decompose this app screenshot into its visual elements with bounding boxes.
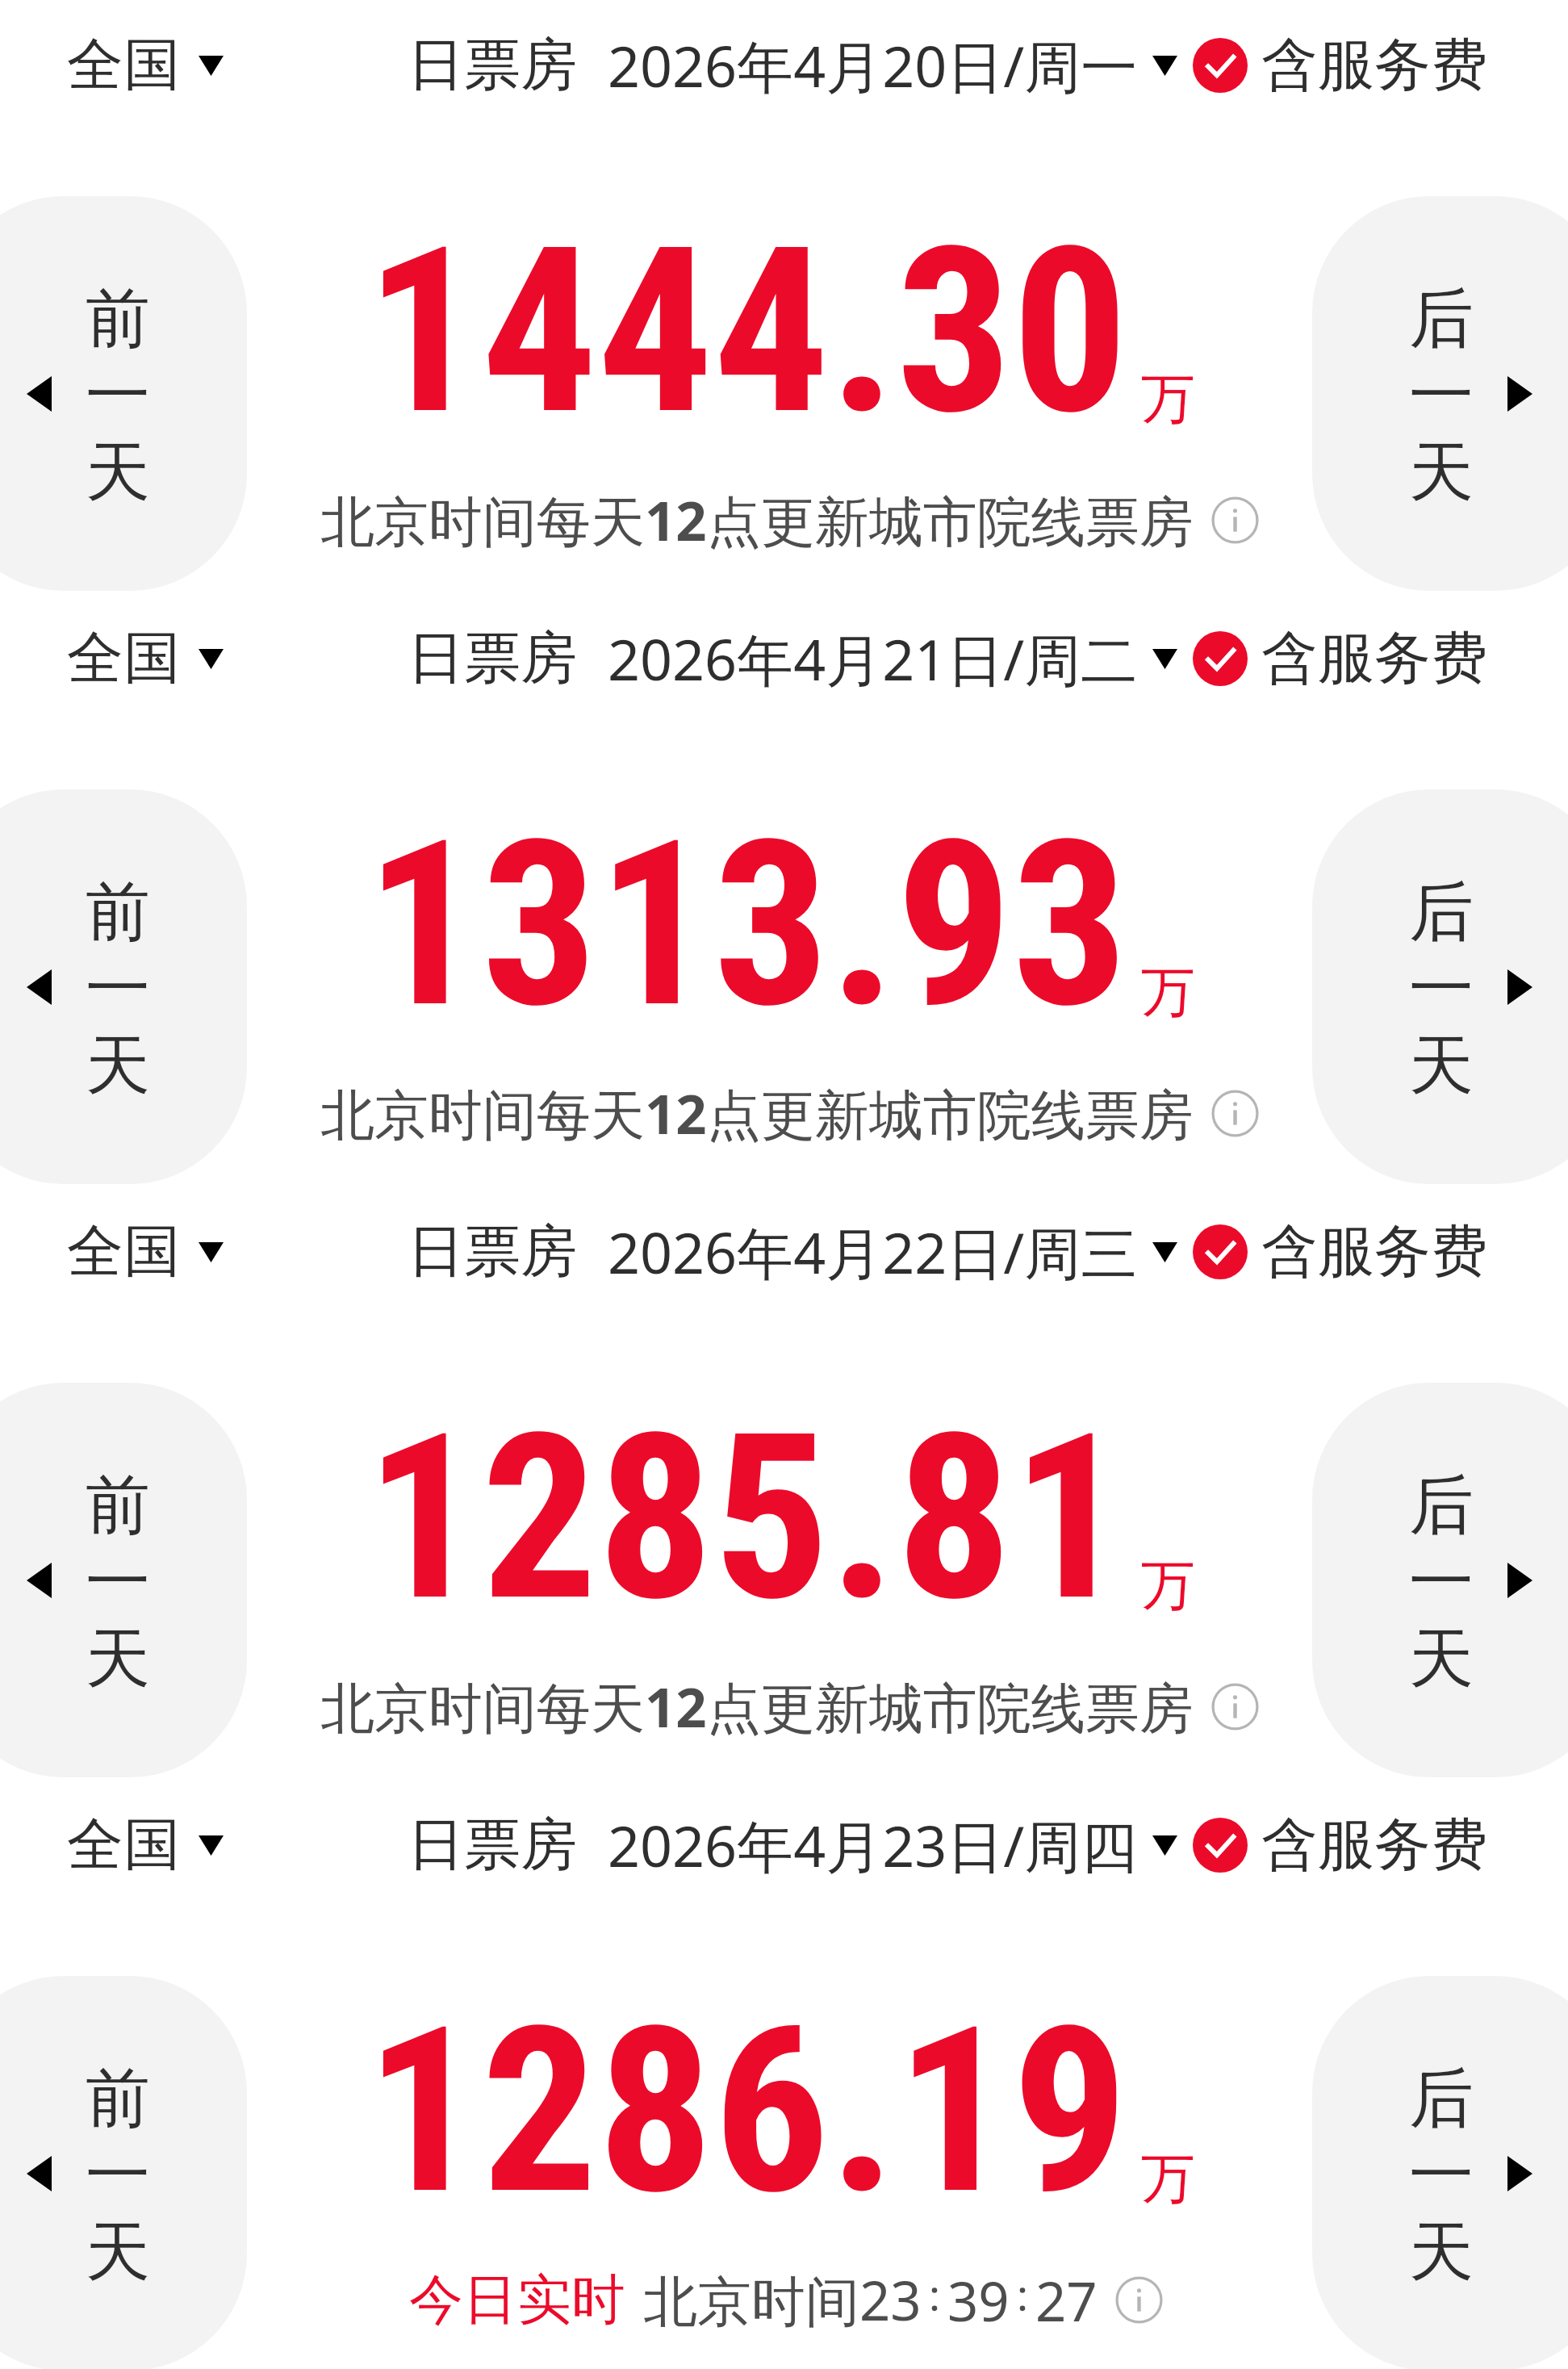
staticText: 日票房 bbox=[408, 1216, 577, 1287]
staticText: 1285.81 bbox=[366, 1384, 1128, 1653]
button[interactable]: 选择日期 bbox=[608, 22, 1177, 109]
staticText: 1444.30 bbox=[366, 198, 1128, 467]
staticText: 一 bbox=[86, 355, 150, 432]
button[interactable]: 日票房 bbox=[408, 615, 577, 702]
staticText: 2026年4月23日/周四 bbox=[608, 1806, 1138, 1884]
button[interactable]: 日票房 bbox=[408, 22, 577, 109]
staticText: 万 bbox=[1141, 1551, 1195, 1619]
button[interactable]: 说明 bbox=[1211, 1090, 1259, 1137]
button[interactable]: 选择日期 bbox=[608, 615, 1177, 702]
staticText: 万 bbox=[1141, 2145, 1195, 2212]
staticText: 39 bbox=[947, 2263, 1010, 2337]
staticText: 天 bbox=[86, 2212, 150, 2288]
staticText: 前 bbox=[86, 872, 150, 948]
staticText: 天 bbox=[1409, 1025, 1474, 1102]
button[interactable]: 前一天 bbox=[0, 196, 247, 591]
staticText: 全国 bbox=[67, 1810, 180, 1881]
button[interactable]: 含服务费 bbox=[1193, 1208, 1487, 1295]
button[interactable]: 说明 bbox=[1211, 496, 1259, 544]
button[interactable]: 含服务费 bbox=[1193, 1802, 1487, 1889]
staticText: 一 bbox=[1409, 1542, 1474, 1618]
staticText: 日票房 bbox=[408, 1810, 577, 1881]
button[interactable]: 日票房 bbox=[408, 1208, 577, 1295]
staticText: 含服务费 bbox=[1261, 1216, 1487, 1287]
staticText: 前 bbox=[86, 278, 150, 355]
staticText: 后 bbox=[1409, 1465, 1474, 1542]
button[interactable]: 说明 bbox=[1115, 2276, 1163, 2324]
button[interactable]: 选择地区：全国 bbox=[67, 1208, 224, 1295]
staticText: 天 bbox=[1409, 432, 1474, 509]
staticText: 天 bbox=[86, 1025, 150, 1102]
button[interactable]: 含服务费 bbox=[1193, 22, 1487, 109]
staticText: 后 bbox=[1409, 2058, 1474, 2135]
staticText: 一 bbox=[1409, 355, 1474, 432]
staticText: 1286.19 bbox=[366, 1978, 1128, 2246]
staticText: 全国 bbox=[67, 30, 180, 101]
staticText: 含服务费 bbox=[1261, 30, 1487, 101]
staticText: 日票房 bbox=[408, 30, 577, 101]
staticText: 2026年4月22日/周三 bbox=[608, 1213, 1138, 1291]
staticText: 天 bbox=[1409, 2212, 1474, 2288]
staticText: 万 bbox=[1141, 365, 1195, 433]
staticText: 北京时间23 bbox=[643, 2262, 922, 2337]
button[interactable]: 日票房 bbox=[408, 1802, 577, 1889]
button[interactable]: 选择地区：全国 bbox=[67, 1802, 224, 1889]
staticText: 一 bbox=[86, 2135, 150, 2212]
staticText: 前 bbox=[86, 1465, 150, 1542]
staticText: 后 bbox=[1409, 278, 1474, 355]
staticText: 天 bbox=[86, 432, 150, 509]
staticText: 全国 bbox=[67, 1216, 180, 1287]
button[interactable]: 后一天 bbox=[1312, 1383, 1568, 1777]
button[interactable]: 后一天 bbox=[1312, 789, 1568, 1184]
button[interactable]: 说明 bbox=[1211, 1683, 1259, 1731]
staticText: 一 bbox=[86, 1542, 150, 1618]
staticText: 前 bbox=[86, 2058, 150, 2135]
staticText: 万 bbox=[1141, 958, 1195, 1026]
button[interactable]: 后一天 bbox=[1312, 196, 1568, 591]
staticText: 2026年4月21日/周二 bbox=[608, 620, 1138, 697]
staticText: 含服务费 bbox=[1261, 623, 1487, 694]
button[interactable]: 前一天 bbox=[0, 1976, 247, 2369]
staticText: 全国 bbox=[67, 623, 180, 694]
staticText: 1313.93 bbox=[366, 791, 1128, 1060]
staticText: 一 bbox=[86, 948, 150, 1025]
button[interactable]: 后一天 bbox=[1312, 1976, 1568, 2369]
staticText: 今日实时 bbox=[409, 2266, 625, 2333]
button[interactable]: 选择地区：全国 bbox=[67, 22, 224, 109]
staticText: 一 bbox=[1409, 2135, 1474, 2212]
button[interactable]: 选择日期 bbox=[608, 1802, 1177, 1889]
button[interactable]: 前一天 bbox=[0, 789, 247, 1184]
staticText: 27 bbox=[1035, 2263, 1098, 2337]
button[interactable]: 选择地区：全国 bbox=[67, 615, 224, 702]
button[interactable]: 含服务费 bbox=[1193, 615, 1487, 702]
staticText: 一 bbox=[1409, 948, 1474, 1025]
button[interactable]: 选择日期 bbox=[608, 1208, 1177, 1295]
staticText: 后 bbox=[1409, 872, 1474, 948]
staticText: 日票房 bbox=[408, 623, 577, 694]
staticText: 天 bbox=[86, 1618, 150, 1695]
staticText: 北京时间每天12点更新城市院线票房 bbox=[320, 1669, 1194, 1743]
button[interactable]: 前一天 bbox=[0, 1383, 247, 1777]
staticText: 2026年4月20日/周一 bbox=[608, 27, 1138, 104]
staticText: 天 bbox=[1409, 1618, 1474, 1695]
staticText: 北京时间每天12点更新城市院线票房 bbox=[320, 1076, 1194, 1150]
staticText: 含服务费 bbox=[1261, 1810, 1487, 1881]
staticText: 北京时间每天12点更新城市院线票房 bbox=[320, 483, 1194, 557]
